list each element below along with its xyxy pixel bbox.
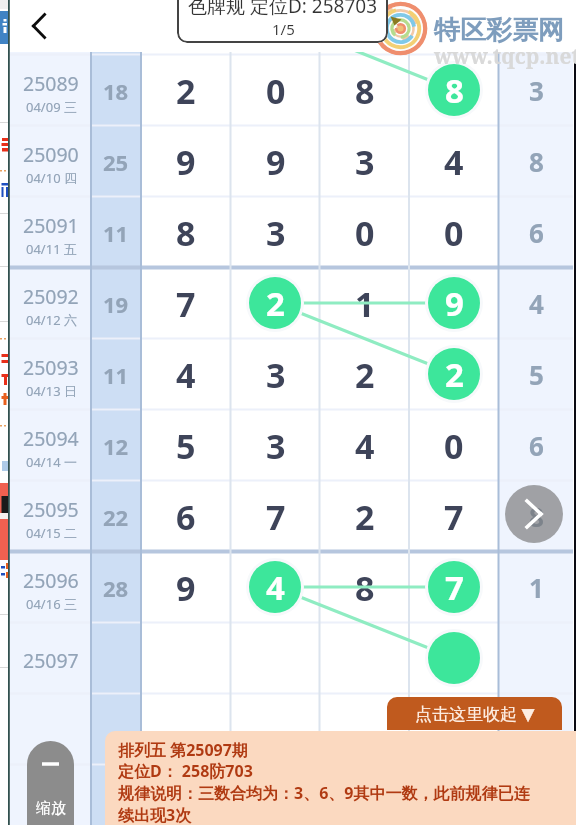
staticText: 8 (355, 565, 375, 611)
staticText: 3 (266, 352, 286, 398)
staticText: 2 (176, 68, 196, 114)
staticText: 排列五 第25097期 定位D： 258防703 规律说明：三数合均为：3、6、… (118, 739, 530, 825)
staticText: 25092 (23, 283, 79, 310)
staticText: 4 (266, 565, 285, 610)
staticText: 4 (444, 139, 464, 185)
staticText: 4 (529, 286, 544, 321)
staticText: 04/09 三 (26, 98, 77, 116)
staticText: 6 (176, 494, 196, 540)
staticText: 9 (176, 565, 196, 611)
staticText: 28 (103, 573, 129, 603)
staticText: 2 (266, 281, 285, 326)
staticText: 12 (103, 431, 129, 461)
staticText: 3 (355, 139, 375, 185)
staticText: 25091 (23, 212, 79, 239)
staticText: 0 (444, 210, 464, 256)
staticText: 缩放 (36, 799, 66, 818)
button[interactable]: 点击这里收起 ▼ (387, 697, 562, 730)
staticText: 3 (266, 423, 286, 469)
staticText: 04/13 日 (26, 382, 77, 400)
staticText: 1/5 (272, 19, 295, 39)
button[interactable]: 2 (425, 345, 483, 403)
staticText: 4 (355, 423, 375, 469)
staticText: 11 (103, 360, 129, 390)
staticText: 8 (355, 68, 375, 114)
staticText: 25090 (23, 141, 79, 168)
button[interactable]: 色牌规 定位D: 258703 (177, 0, 388, 43)
staticText: 04/10 四 (26, 169, 77, 187)
staticText: 25097 (23, 647, 79, 674)
button[interactable]: 9 (425, 274, 483, 332)
staticText: 5 (176, 423, 196, 469)
staticText: 04/15 二 (26, 524, 77, 542)
staticText: 18 (103, 76, 129, 106)
staticText: 6 (529, 428, 544, 463)
button[interactable]: Next page (505, 485, 563, 543)
staticText: 25093 (23, 354, 79, 381)
button[interactable] (425, 629, 483, 687)
button[interactable]: Zoom (27, 741, 74, 825)
staticText: 点击这里收起 ▼ (415, 702, 535, 725)
staticText: 7 (445, 565, 464, 610)
staticText: 1 (529, 570, 544, 605)
staticText: 7 (266, 494, 286, 540)
staticText: 25 (103, 147, 129, 177)
staticText: 特区彩票网 (434, 14, 564, 47)
staticText: 9 (266, 139, 286, 185)
staticText: 1 (355, 281, 375, 327)
staticText: 04/16 三 (26, 595, 77, 613)
staticText: 9 (176, 139, 196, 185)
staticText: 4 (176, 352, 196, 398)
button[interactable]: 4 (246, 558, 304, 616)
staticText: 04/11 五 (26, 240, 77, 258)
staticText: 8 (445, 68, 464, 113)
staticText: www.tqcp.net (434, 42, 576, 71)
button[interactable]: 2 (246, 274, 304, 332)
staticText: 04/12 六 (26, 311, 77, 329)
staticText: 7 (444, 494, 464, 540)
staticText: 3 (266, 210, 286, 256)
button[interactable]: Back (17, 4, 61, 48)
staticText: 0 (266, 68, 286, 114)
staticText: 8 (529, 499, 544, 534)
staticText: 色牌规 定位D: 258703 (188, 0, 378, 19)
staticText: 25089 (23, 70, 79, 97)
staticText: 25096 (23, 567, 79, 594)
staticText: 11 (103, 218, 129, 248)
button[interactable]: 8 (425, 61, 483, 119)
staticText: 25095 (23, 496, 79, 523)
staticText: 9 (445, 281, 464, 326)
button[interactable]: 7 (425, 558, 483, 616)
staticText: 2 (445, 352, 464, 397)
staticText: 3 (529, 73, 544, 108)
staticText: 19 (103, 289, 129, 319)
staticText: 2 (355, 352, 375, 398)
staticText: 0 (355, 210, 375, 256)
staticText: 8 (176, 210, 196, 256)
staticText: 5 (529, 357, 544, 392)
staticText: 22 (103, 502, 129, 532)
staticText: 2 (355, 494, 375, 540)
staticText: 6 (529, 215, 544, 250)
staticText: 8 (529, 144, 544, 179)
staticText: 0 (444, 423, 464, 469)
staticText: 7 (176, 281, 196, 327)
staticText: 04/14 一 (26, 453, 77, 471)
staticText: 25094 (23, 425, 79, 452)
